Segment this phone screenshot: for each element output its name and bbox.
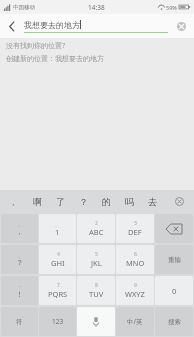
staticText: 中国移动 (13, 4, 35, 11)
staticText: ， (16, 227, 24, 236)
staticText: 重输 (168, 256, 181, 264)
staticText: 59% (166, 4, 177, 11)
staticText: 啊 (33, 196, 42, 207)
staticText: PQRS (48, 289, 68, 299)
button[interactable]: Back (0, 14, 24, 38)
staticText: JKL (91, 258, 102, 268)
staticText: 2 (95, 220, 98, 227)
staticText: 创建新的位置：我想要去的地方 (6, 54, 104, 63)
button[interactable]: 、 (39, 214, 76, 243)
staticText: TUV (89, 289, 104, 299)
button[interactable]: 0 (155, 276, 193, 305)
staticText: 9 (134, 282, 137, 289)
staticText: 去 (148, 196, 157, 207)
button[interactable]: 重输 (155, 245, 193, 274)
button[interactable]: 我想要去的地方 (24, 14, 168, 38)
staticText: 123 (52, 317, 64, 326)
button[interactable]: Backspace (155, 214, 193, 243)
staticText: 0 (172, 286, 177, 296)
button[interactable]: ， (0, 190, 26, 213)
button[interactable]: 去 (141, 190, 164, 213)
button[interactable]: Close candidates (164, 190, 194, 213)
staticText: 6 (134, 251, 137, 258)
button[interactable]: 的 (95, 190, 118, 213)
staticText: ？ (16, 258, 24, 267)
button[interactable]: 4 (39, 245, 76, 274)
button[interactable]: 3 (116, 214, 154, 243)
staticText: 14:38 (88, 3, 105, 12)
staticText: 5 (95, 251, 98, 258)
button[interactable]: 吗 (118, 190, 141, 213)
button[interactable]: Voice input (77, 307, 115, 336)
button[interactable]: 。 (1, 245, 38, 274)
button[interactable]: 8 (77, 276, 115, 305)
staticText: 吗 (125, 196, 134, 207)
staticText: 的 (102, 196, 111, 207)
staticText: 没有找到你的位置? (6, 41, 66, 51)
staticText: 4 (57, 251, 60, 258)
staticText: 。 (18, 252, 23, 258)
staticText: 3 (134, 220, 137, 227)
button[interactable]: 符 (1, 307, 38, 336)
staticText: 、 (55, 221, 60, 227)
staticText: ABC (89, 227, 104, 237)
button[interactable]: 啊 (26, 190, 49, 213)
button[interactable]: 9 (116, 276, 154, 305)
button[interactable]: 6 (116, 245, 154, 274)
staticText: ~ (19, 283, 22, 290)
staticText: DEF (128, 227, 142, 237)
staticText: 1 (55, 227, 60, 237)
button[interactable]: 7 (39, 276, 76, 305)
staticText: GHI (51, 258, 65, 268)
button[interactable]: 5 (77, 245, 115, 274)
staticText: ， (9, 197, 17, 207)
button[interactable]: ~ (1, 276, 38, 305)
staticText: 我想要去的地方 (24, 20, 80, 30)
button[interactable]: Clear (168, 14, 194, 38)
button[interactable]: 了 (49, 190, 72, 213)
staticText: 中/英 (127, 317, 143, 326)
staticText: 8 (95, 282, 98, 289)
staticText: MNO (126, 258, 145, 268)
staticText: ！ (16, 290, 24, 299)
staticText: 符 (16, 318, 23, 326)
staticText: 搜索 (168, 318, 181, 326)
button[interactable]: 搜索 (155, 307, 193, 336)
button[interactable]: 中/英 (116, 307, 154, 336)
button[interactable]: 2 (77, 214, 115, 243)
staticText: 。 (18, 221, 23, 227)
staticText: 7 (57, 282, 60, 289)
button[interactable]: ？ (72, 190, 95, 213)
button[interactable]: 123 (39, 307, 76, 336)
staticText: WXYZ (125, 289, 145, 299)
staticText: ？ (79, 196, 88, 207)
staticText: 了 (56, 196, 65, 207)
